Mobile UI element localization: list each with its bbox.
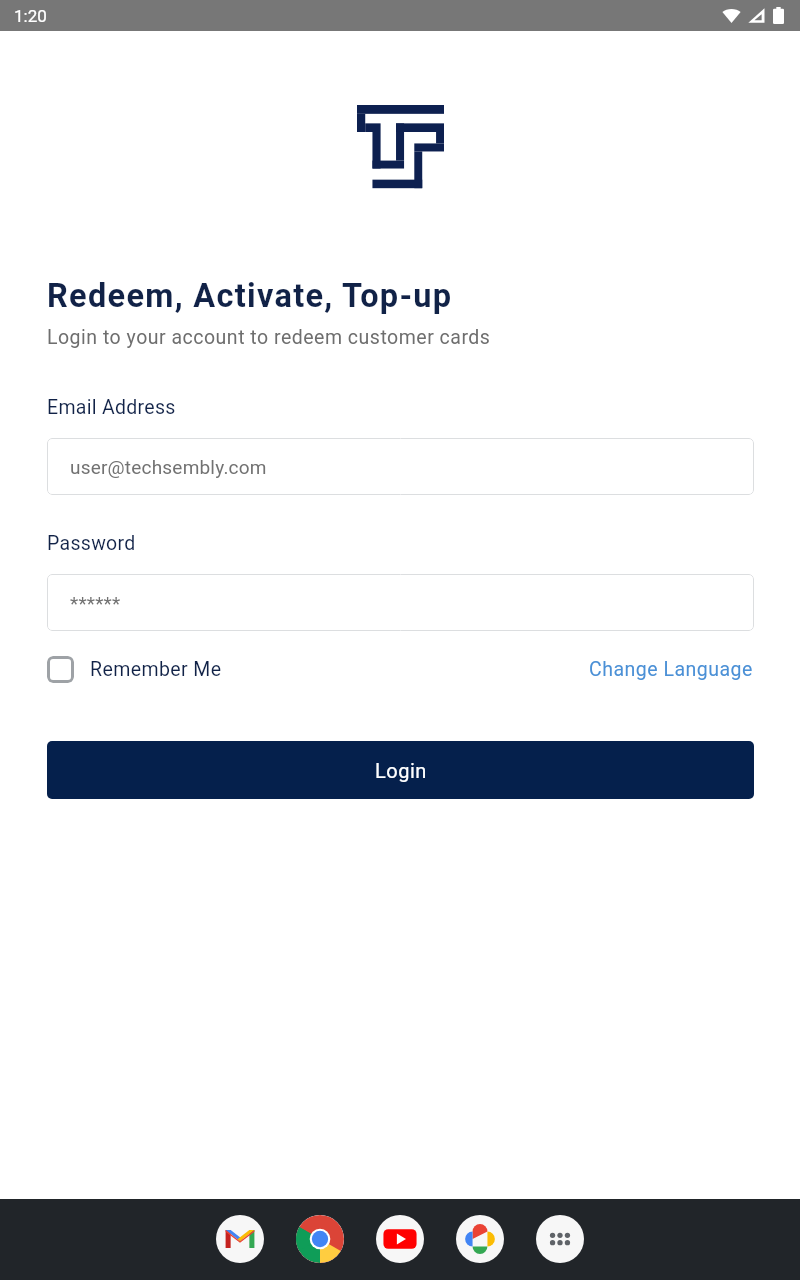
button[interactable]: YouTube [376,1215,424,1263]
staticText: Redeem, Activate, Top-up [47,277,453,315]
staticText: Change Language [589,658,753,681]
button[interactable]: Email address field [47,438,754,495]
staticText: Login to your account to redeem customer… [47,326,491,349]
button[interactable]: Photos [456,1215,504,1263]
button[interactable]: Password field [47,574,754,631]
staticText: Login [375,759,427,782]
button[interactable]: All apps [536,1215,584,1263]
staticText: Password [47,532,136,555]
staticText: ****** [70,592,121,614]
button[interactable]: Change Language [589,658,753,681]
staticText: user@techsembly.com [70,456,267,478]
staticText: Remember Me [90,658,222,681]
button[interactable]: Remember Me [47,656,222,683]
button[interactable]: Gmail [216,1215,264,1263]
button[interactable]: Chrome [296,1215,344,1263]
button[interactable]: Login [47,741,754,799]
staticText: 1:20 [14,6,47,26]
staticText: Email Address [47,396,176,419]
